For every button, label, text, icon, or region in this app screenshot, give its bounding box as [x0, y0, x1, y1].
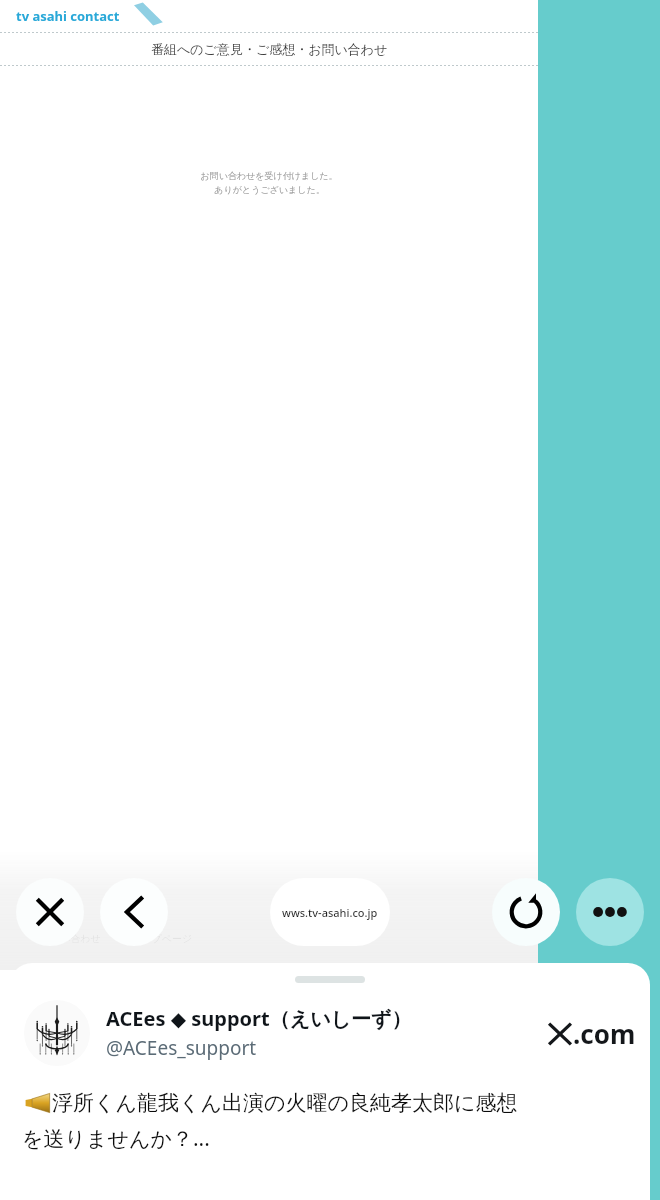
staticText: お問い合わせを受け付けました。 [200, 170, 338, 181]
button[interactable]: ACEes ◆ support（えいしーず） [10, 963, 650, 1200]
staticText: tv asahi contact [16, 7, 120, 25]
staticText: 浮所くん龍我くん出演の火曜の良純孝太郎に感想 [52, 1090, 518, 1116]
staticText: トップページ [131, 932, 193, 945]
staticText: wws.tv-asahi.co.jp [282, 905, 378, 920]
staticText: @ACEes_support [106, 1035, 257, 1061]
staticText: お問い合わせ [40, 932, 101, 945]
staticText: を送りませんか？... [22, 1124, 210, 1153]
button[interactable]: More options [576, 878, 644, 946]
staticText: .com [573, 1016, 636, 1051]
button[interactable]: Close [16, 878, 84, 946]
staticText: ACEes ◆ support（えいしーず） [106, 1005, 412, 1032]
staticText: ありがとうございました。 [214, 184, 325, 195]
button[interactable]: wws.tv-asahi.co.jp [270, 878, 390, 946]
button[interactable]: Reload [492, 878, 560, 946]
button[interactable]: Back [100, 878, 168, 946]
staticText: 番組へのご意見・ご感想・お問い合わせ [151, 41, 388, 57]
